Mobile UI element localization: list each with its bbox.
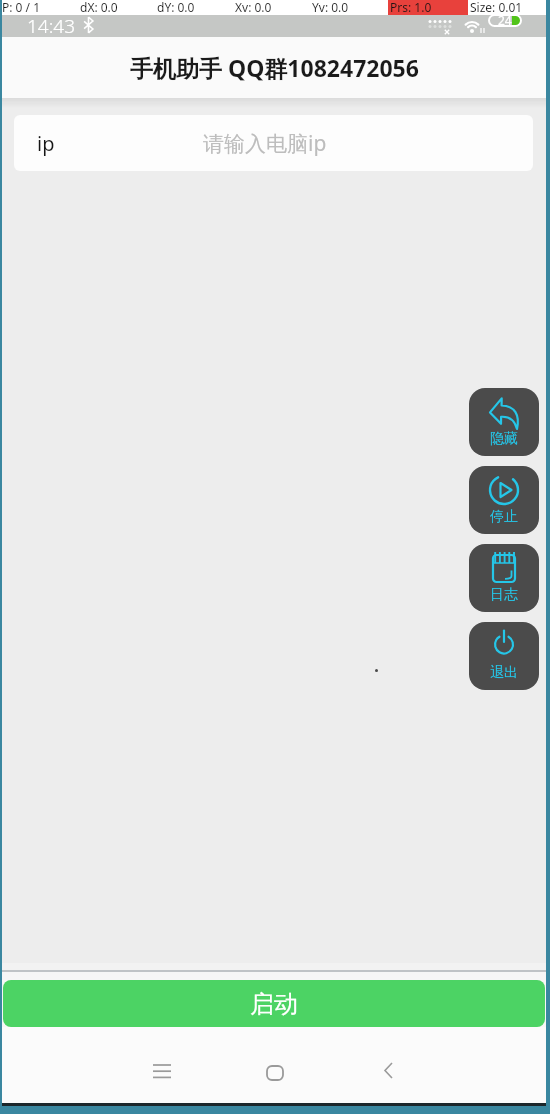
staticText: dX: 0.0 <box>80 0 118 14</box>
staticText: dY: 0.0 <box>157 0 195 14</box>
button[interactable] <box>370 1053 406 1087</box>
button[interactable]: 启动 <box>3 980 545 1027</box>
staticText: 退出 <box>490 664 518 682</box>
staticText: 日志 <box>490 586 518 604</box>
staticText: Size: 0.01 <box>470 0 523 14</box>
staticText: Xv: 0.0 <box>235 0 272 14</box>
staticText: 24 <box>498 12 512 25</box>
staticText: 手机助手 QQ群1082472056 <box>130 52 419 83</box>
staticText: Yv: 0.0 <box>312 0 349 14</box>
button[interactable]: ip <box>14 115 533 171</box>
staticText: 隐藏 <box>490 430 518 448</box>
staticText: 请输入电脑ip <box>203 129 327 158</box>
staticText: P: 0 / 1 <box>2 0 41 14</box>
button[interactable]: 退出 <box>469 622 539 690</box>
staticText: 启动 <box>250 989 298 1019</box>
button[interactable]: 日志 <box>469 544 539 612</box>
button[interactable] <box>143 1054 181 1088</box>
staticText: ip <box>37 130 55 157</box>
button[interactable] <box>256 1056 294 1090</box>
button[interactable]: 停止 <box>469 466 539 534</box>
button[interactable]: 隐藏 <box>469 388 539 456</box>
staticText: 14:43 <box>27 13 76 35</box>
staticText: Prs: 1.0 <box>390 0 432 14</box>
staticText: 停止 <box>490 508 518 526</box>
